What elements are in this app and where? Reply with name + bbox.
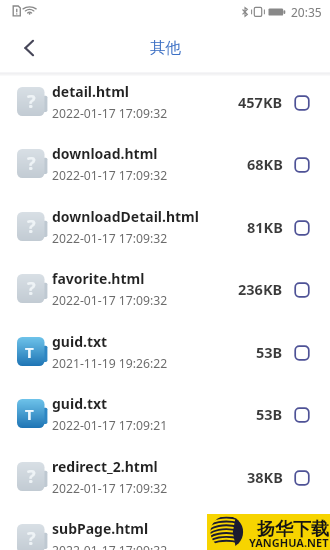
staticText: 68KB — [247, 154, 283, 174]
staticText: YANGHUA.NET — [249, 535, 329, 550]
staticText: 38KB — [247, 467, 283, 487]
button[interactable]: Select file — [290, 91, 314, 115]
staticText: guid.txt — [52, 394, 108, 413]
staticText: downloadDetail.html — [52, 207, 199, 226]
button[interactable]: ? — [0, 445, 330, 508]
staticText: 2022-01-17 17:09:32 — [52, 480, 168, 497]
staticText: T — [25, 342, 34, 362]
staticText: ? — [27, 526, 36, 550]
button[interactable]: ? — [0, 132, 330, 195]
staticText: redirect_2.html — [52, 457, 158, 476]
staticText: ? — [27, 276, 36, 301]
staticText: 2022-01-17 17:09:32 — [52, 105, 168, 122]
staticText: 53B — [256, 342, 283, 362]
staticText: 236KB — [238, 279, 283, 299]
staticText: subPage.html — [52, 519, 149, 538]
staticText: detail.html — [52, 82, 129, 101]
button[interactable]: Select file — [290, 466, 314, 490]
staticText: 2022-01-17 17:09:32 — [52, 167, 168, 184]
button[interactable]: Select file — [290, 403, 314, 427]
button[interactable]: Select file — [290, 278, 314, 302]
button[interactable]: ? — [0, 507, 330, 550]
staticText: ? — [27, 214, 36, 239]
button[interactable]: Select file — [290, 528, 314, 550]
staticText: 2022-01-17 17:09:32 — [52, 292, 168, 309]
staticText: download.html — [52, 144, 158, 163]
staticText: 2022-01-17 17:09:21 — [52, 417, 168, 434]
staticText: ? — [27, 89, 36, 114]
staticText: 53B — [256, 404, 283, 424]
staticText: ? — [27, 464, 36, 489]
staticText: 扬华下载 — [257, 518, 329, 541]
staticText: 2022-01-17 17:09:32 — [52, 542, 168, 550]
staticText: 20:35 — [291, 4, 322, 20]
staticText: 其他 — [150, 38, 181, 58]
button[interactable]: Select file — [290, 341, 314, 365]
staticText: T — [25, 404, 34, 424]
staticText: 457KB — [238, 92, 283, 112]
button[interactable]: Select file — [290, 216, 314, 240]
button[interactable]: T — [0, 382, 330, 445]
button[interactable]: Select file — [290, 153, 314, 177]
button[interactable]: T — [0, 320, 330, 383]
button[interactable]: ? — [0, 257, 330, 320]
staticText: 81KB — [247, 217, 283, 237]
button[interactable]: ? — [0, 195, 330, 258]
staticText: 2022-01-17 17:09:32 — [52, 230, 168, 247]
staticText: 2021-11-19 19:26:22 — [52, 355, 168, 372]
staticText: ? — [27, 151, 36, 176]
staticText: guid.txt — [52, 332, 108, 351]
staticText: favorite.html — [52, 269, 145, 288]
staticText: 45KB — [247, 529, 283, 549]
button[interactable]: Back — [0, 24, 52, 72]
button[interactable]: ? — [0, 70, 330, 133]
